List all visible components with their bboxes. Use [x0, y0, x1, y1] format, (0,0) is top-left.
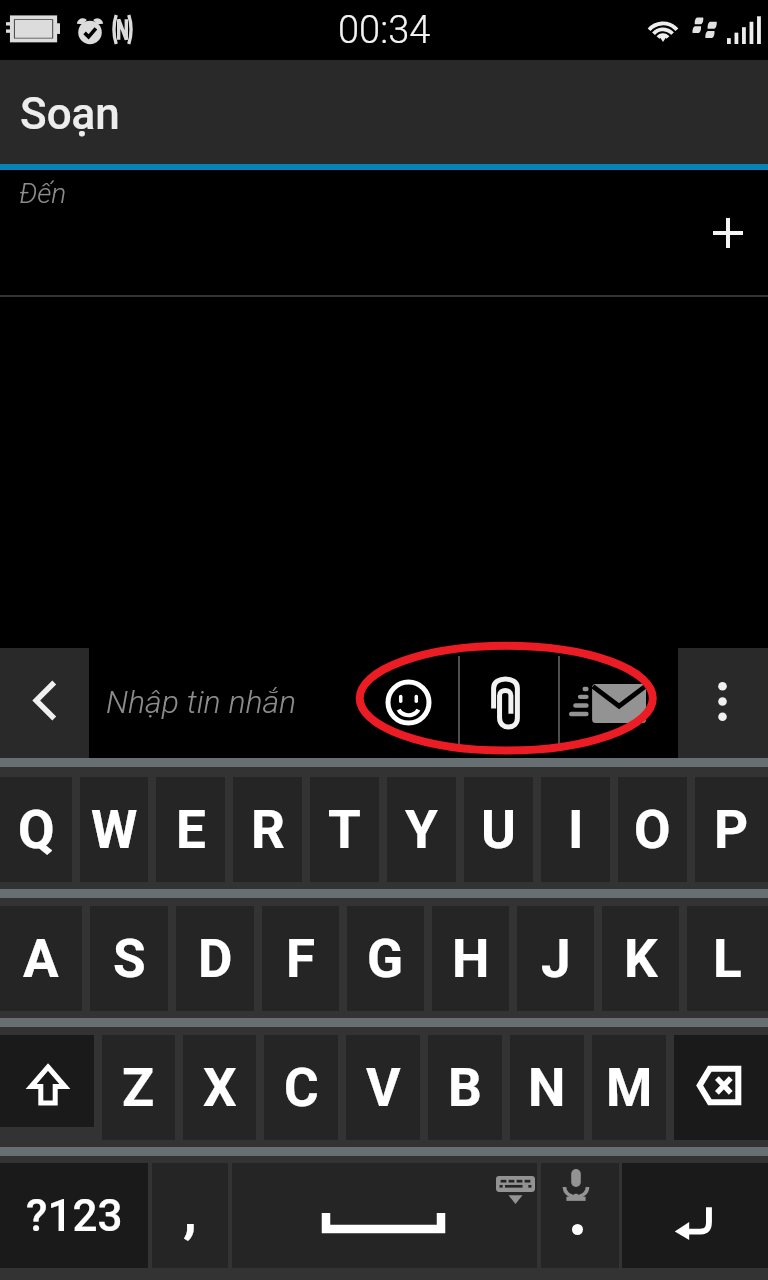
staticText: Q	[18, 799, 55, 861]
staticText: B	[448, 1057, 482, 1119]
button[interactable]: Nhập tin nhắn	[89, 648, 369, 758]
staticText: K	[624, 928, 658, 990]
staticText: P	[714, 799, 749, 861]
staticText: D	[198, 928, 233, 990]
button[interactable]: L	[687, 906, 768, 1011]
staticText: G	[367, 928, 404, 990]
button[interactable]: Send	[560, 648, 678, 758]
staticText: Soạn	[20, 88, 120, 140]
staticText: M	[606, 1057, 653, 1119]
staticText: E	[176, 799, 206, 861]
button[interactable]: Soạn	[0, 60, 768, 164]
staticText: I	[568, 799, 584, 861]
button[interactable]: K	[602, 906, 679, 1011]
staticText: S	[113, 928, 146, 990]
button[interactable]: A	[0, 906, 82, 1011]
staticText: N	[528, 1057, 566, 1119]
staticText: ,	[183, 1173, 197, 1246]
button[interactable]: G	[347, 906, 424, 1011]
staticText: F	[286, 928, 316, 990]
button[interactable]: O	[618, 777, 687, 882]
button[interactable]: P	[695, 777, 768, 882]
button[interactable]: Add recipient	[694, 199, 762, 267]
button[interactable]: U	[464, 777, 533, 882]
button[interactable]: Space	[232, 1163, 537, 1268]
button[interactable]: W	[80, 777, 148, 882]
staticText: 00:34	[338, 8, 431, 53]
staticText: R	[251, 799, 285, 861]
staticText: V	[366, 1057, 401, 1119]
staticText: Z	[122, 1057, 155, 1119]
button[interactable]: M	[592, 1035, 666, 1140]
button[interactable]: N	[510, 1035, 584, 1140]
staticText: Đến	[19, 177, 67, 210]
button[interactable]: Attach	[460, 648, 558, 758]
button[interactable]: X	[183, 1035, 256, 1140]
button[interactable]: Q	[0, 777, 72, 882]
staticText: Nhập tin nhắn	[106, 683, 297, 721]
staticText: T	[328, 799, 361, 861]
button[interactable]: V	[346, 1035, 420, 1140]
button[interactable]: R	[233, 777, 302, 882]
button[interactable]: More options	[678, 648, 768, 758]
staticText: O	[634, 799, 671, 861]
staticText: Y	[405, 799, 438, 861]
button[interactable]: ,	[152, 1163, 228, 1268]
button[interactable]: T	[310, 777, 379, 882]
button[interactable]: B	[428, 1035, 502, 1140]
staticText: X	[203, 1057, 237, 1119]
staticText: U	[481, 799, 516, 861]
button[interactable]: Back	[0, 648, 89, 758]
staticText: ?123	[26, 1190, 123, 1242]
button[interactable]: Shift	[0, 1035, 94, 1127]
button[interactable]: E	[156, 777, 225, 882]
button[interactable]: Emoji	[369, 648, 458, 758]
staticText: A	[23, 928, 59, 990]
button[interactable]: D	[176, 906, 254, 1011]
button[interactable]: I	[541, 777, 610, 882]
staticText: H	[452, 928, 490, 990]
staticText: J	[541, 928, 571, 990]
button[interactable]: Z	[102, 1035, 175, 1140]
staticText: C	[284, 1057, 319, 1119]
button[interactable]: F	[262, 906, 339, 1011]
button[interactable]: J	[517, 906, 594, 1011]
button[interactable]: S	[90, 906, 168, 1011]
button[interactable]	[541, 1163, 619, 1268]
staticText: W	[91, 799, 138, 861]
button[interactable]: ?123	[0, 1163, 148, 1268]
staticText: L	[713, 928, 742, 990]
button[interactable]: Y	[387, 777, 456, 882]
button[interactable]: Enter	[622, 1163, 768, 1268]
button[interactable]: Backspace	[674, 1035, 768, 1140]
button[interactable]: H	[432, 906, 509, 1011]
button[interactable]: C	[264, 1035, 338, 1140]
